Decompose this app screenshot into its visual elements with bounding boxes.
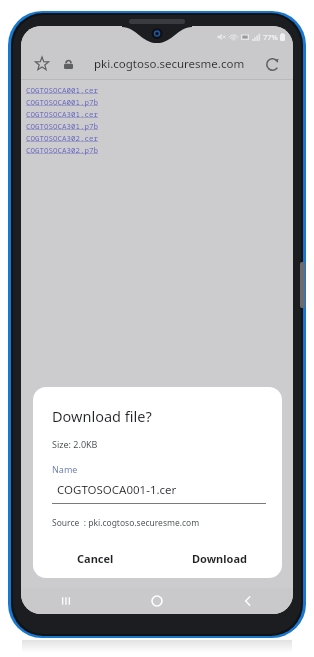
- button[interactable]: Cancel: [33, 538, 157, 578]
- button[interactable]: Site security: [59, 55, 77, 73]
- staticText: Cancel: [77, 551, 114, 566]
- staticText: COGTOSOCA001.p7b: [26, 97, 98, 107]
- staticText: pki.cogtoso.securesme.com: [94, 56, 245, 72]
- button[interactable]: COGTOSOCA001.cer: [26, 84, 98, 96]
- staticText: 77%: [263, 32, 278, 42]
- button[interactable]: COGTOSOCA302.cer: [26, 132, 98, 144]
- button[interactable]: Recents: [21, 588, 111, 614]
- staticText: COGTOSOCA301.cer: [26, 109, 98, 119]
- button[interactable]: COGTOSOCA001-1.cer: [52, 482, 266, 504]
- staticText: Size: 2.0KB: [52, 438, 98, 450]
- staticText: COGTOSOCA001-1.cer: [57, 482, 177, 498]
- button[interactable]: COGTOSOCA301.cer: [26, 108, 98, 120]
- staticText: COGTOSOCA001.cer: [26, 85, 98, 95]
- button[interactable]: Bookmark: [31, 53, 53, 75]
- button[interactable]: COGTOSOCA001.p7b: [26, 96, 98, 108]
- button[interactable]: Download: [157, 538, 282, 578]
- button[interactable]: Back: [202, 588, 293, 614]
- staticText: Source : pki.cogtoso.securesme.com: [52, 517, 200, 529]
- staticText: COGTOSOCA302.p7b: [26, 145, 98, 155]
- staticText: Download file?: [52, 406, 152, 426]
- staticText: COGTOSOCA301.p7b: [26, 121, 98, 131]
- staticText: COGTOSOCA302.cer: [26, 133, 98, 143]
- staticText: Download: [192, 551, 247, 566]
- button[interactable]: Reload: [261, 53, 283, 75]
- staticText: Name: [52, 463, 78, 475]
- button[interactable]: COGTOSOCA301.p7b: [26, 120, 98, 132]
- button[interactable]: COGTOSOCA302.p7b: [26, 144, 98, 156]
- button[interactable]: Home: [111, 588, 202, 614]
